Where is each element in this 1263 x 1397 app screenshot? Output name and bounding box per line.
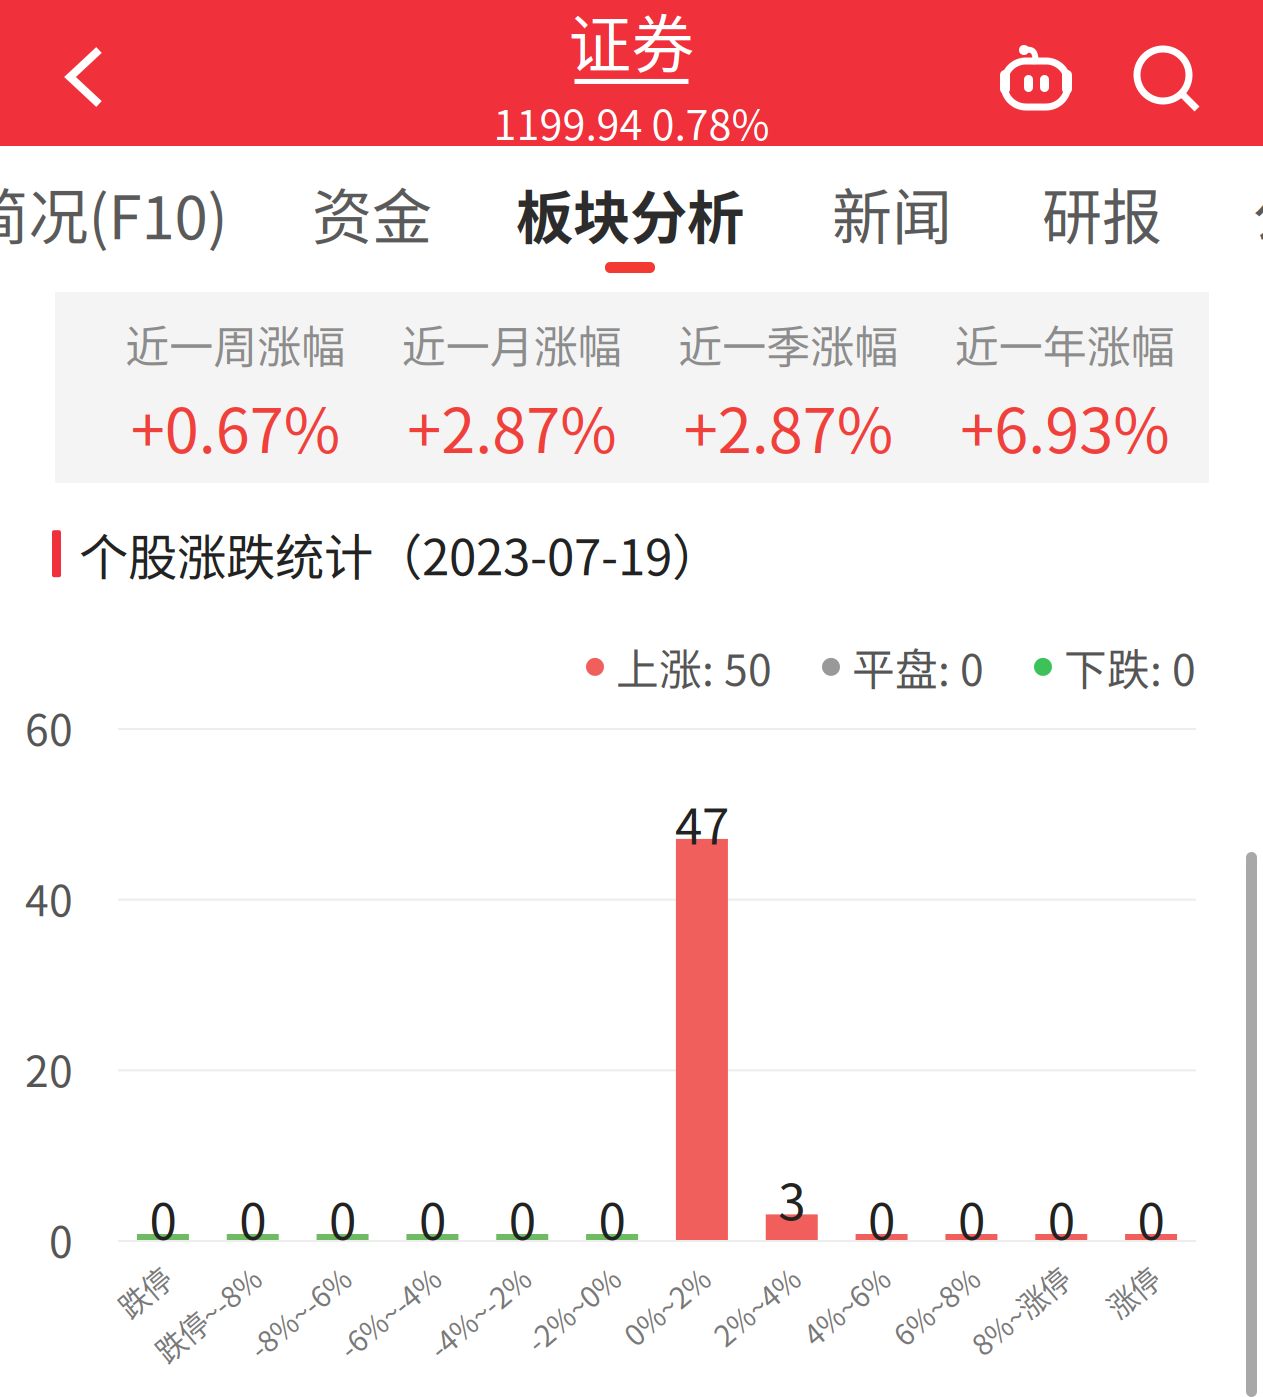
staticText: 新闻 — [832, 170, 952, 256]
staticText: 0 — [419, 1182, 446, 1254]
staticText: +2.87% — [407, 382, 616, 471]
staticText: 跌停~-8% — [116, 1257, 243, 1299]
staticText: +0.67% — [131, 382, 340, 471]
staticText: 4%~6% — [770, 1257, 872, 1299]
staticText: 47 — [675, 787, 729, 859]
staticText: 20 — [25, 1037, 73, 1099]
staticText: 研报 — [1042, 170, 1162, 256]
button[interactable]: Assistant — [965, 12, 1103, 134]
staticText: 近一周涨幅 — [125, 312, 345, 376]
staticText: 涨停 — [1083, 1257, 1141, 1299]
button[interactable]: 研报 — [1012, 148, 1192, 278]
staticText: 平盘: 0 — [852, 636, 984, 698]
staticText: 0 — [329, 1182, 356, 1254]
staticText: 个股涨跌统计（2023-07-19） — [79, 518, 721, 589]
staticText: 0 — [599, 1182, 626, 1254]
staticText: 0 — [958, 1182, 985, 1254]
staticText: -8%~-6% — [211, 1257, 333, 1299]
staticText: 0 — [149, 1182, 176, 1254]
staticText: +2.87% — [684, 382, 893, 471]
staticText: -6%~-4% — [300, 1257, 422, 1299]
staticText: 0 — [868, 1182, 895, 1254]
button[interactable]: 简况(F10) — [0, 148, 228, 278]
button[interactable]: 资金 — [282, 148, 462, 278]
staticText: 8%~涨停 — [934, 1257, 1051, 1299]
staticText: 板块分析 — [516, 172, 744, 255]
staticText: +6.93% — [960, 382, 1169, 471]
staticText: 0 — [49, 1208, 73, 1270]
staticText: 0%~2% — [590, 1257, 692, 1299]
staticText: 3 — [778, 1163, 805, 1234]
staticText: 0 — [239, 1182, 266, 1254]
staticText: 40 — [25, 867, 73, 929]
staticText: 近一年涨幅 — [955, 312, 1175, 376]
staticText: -2%~0% — [490, 1257, 602, 1299]
button[interactable]: 新闻 — [802, 148, 982, 278]
button[interactable]: 公告 — [1222, 148, 1263, 278]
staticText: 上涨: 50 — [616, 636, 772, 698]
staticText: 资金 — [312, 170, 432, 256]
staticText: 证券 — [568, 0, 694, 85]
button[interactable]: Back — [0, 18, 130, 128]
button[interactable]: Search — [1103, 12, 1263, 134]
staticText: 跌停 — [95, 1257, 153, 1299]
staticText: -4%~-2% — [390, 1257, 512, 1299]
staticText: 60 — [25, 696, 73, 758]
staticText: 近一季涨幅 — [678, 312, 898, 376]
staticText: 0 — [509, 1182, 536, 1254]
staticText: 6%~8% — [859, 1257, 961, 1299]
staticText: 2%~4% — [680, 1257, 782, 1299]
button[interactable]: 板块分析 — [480, 148, 780, 278]
staticText: 1199.94 0.78% — [493, 92, 769, 152]
staticText: 0 — [1048, 1182, 1075, 1254]
staticText: 0 — [1138, 1182, 1165, 1254]
staticText: 近一月涨幅 — [402, 312, 622, 376]
staticText: 简况(F10) — [0, 170, 227, 256]
staticText: 公告 — [1252, 170, 1263, 256]
staticText: 下跌: 0 — [1064, 636, 1196, 698]
